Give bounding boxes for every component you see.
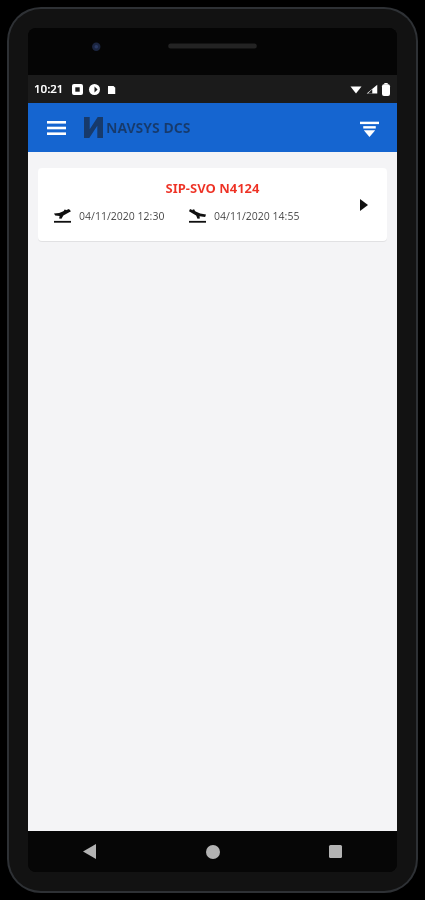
button[interactable]: Open flight details bbox=[351, 192, 377, 218]
button[interactable]: Open navigation menu bbox=[36, 108, 76, 148]
staticText: 10:21 bbox=[34, 81, 64, 97]
staticText: SIP-SVO N4124 bbox=[38, 179, 387, 197]
button[interactable]: Back bbox=[28, 831, 151, 872]
button[interactable]: Recent apps bbox=[274, 831, 397, 872]
button[interactable]: Home bbox=[151, 831, 274, 872]
button[interactable]: SIP-SVO N4124 bbox=[38, 168, 387, 241]
staticText: 04/11/2020 12:30 bbox=[79, 209, 165, 223]
staticText: 04/11/2020 14:55 bbox=[214, 209, 300, 223]
staticText: NAVSYS DCS bbox=[106, 118, 191, 137]
button[interactable]: Filter flights bbox=[349, 108, 389, 148]
